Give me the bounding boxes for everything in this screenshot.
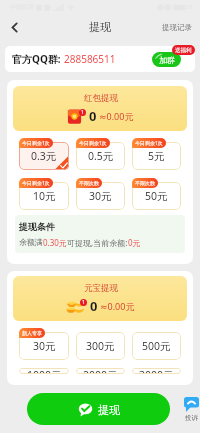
staticText: 提现 bbox=[89, 20, 111, 34]
button[interactable]: 1000元 bbox=[19, 368, 69, 374]
staticText: 今日剩余1次 bbox=[22, 180, 50, 187]
button[interactable]: 10元 bbox=[19, 182, 69, 210]
button[interactable]: 0.3元 bbox=[19, 142, 69, 170]
button[interactable]: 30元 bbox=[76, 182, 125, 210]
staticText: 0元 bbox=[128, 237, 141, 248]
staticText: 投诉 bbox=[185, 414, 198, 422]
staticText: 新人专享 bbox=[22, 330, 42, 336]
staticText: 2000元 bbox=[83, 368, 118, 374]
staticText: 1 bbox=[82, 299, 85, 306]
staticText: 今日剩余1次 bbox=[135, 140, 163, 147]
staticText: 0.3元 bbox=[31, 149, 57, 163]
staticText: 0.30元 bbox=[43, 237, 67, 248]
staticText: 0 bbox=[89, 107, 97, 125]
staticText: 加群 bbox=[159, 55, 175, 65]
staticText: 300元 bbox=[86, 339, 115, 353]
staticText: 30元 bbox=[33, 339, 56, 353]
staticText: 50元 bbox=[145, 189, 168, 203]
staticText: 官方QQ群: bbox=[12, 52, 64, 66]
staticText: 今日剩余1次 bbox=[22, 140, 50, 147]
button[interactable]: 500元 bbox=[132, 332, 181, 360]
button[interactable]: 50元 bbox=[132, 182, 181, 210]
staticText: 今日剩余1次 bbox=[79, 140, 107, 147]
staticText: 1000元 bbox=[27, 368, 62, 374]
button[interactable]: 加群 bbox=[152, 52, 181, 67]
staticText: 提现记录 bbox=[162, 23, 192, 32]
staticText: 不限次数 bbox=[135, 180, 155, 186]
staticText: 0.5元 bbox=[88, 149, 114, 163]
button[interactable]: 投诉 bbox=[183, 397, 199, 422]
button[interactable]: 2000元 bbox=[76, 368, 125, 374]
staticText: 送福利 bbox=[175, 47, 192, 54]
button[interactable]: 3000元 bbox=[132, 368, 181, 374]
staticText: 余额满 bbox=[19, 237, 43, 247]
button[interactable]: 300元 bbox=[76, 332, 125, 360]
staticText: 提现条件 bbox=[19, 221, 55, 232]
button[interactable]: 提现记录 bbox=[154, 17, 200, 38]
staticText: 3000元 bbox=[139, 368, 174, 374]
staticText: 0 bbox=[90, 297, 98, 315]
staticText: 10元 bbox=[33, 189, 56, 203]
staticText: 不限次数 bbox=[79, 180, 99, 186]
staticText: 红包提现 bbox=[84, 93, 118, 104]
button[interactable]: 5元 bbox=[132, 142, 181, 170]
staticText: 1 bbox=[81, 109, 84, 116]
staticText: ≈0.00元 bbox=[99, 110, 134, 122]
button[interactable]: 30元 bbox=[19, 332, 69, 360]
staticText: ≈0.00元 bbox=[100, 300, 135, 312]
staticText: 可提现,当前余额: bbox=[67, 237, 128, 248]
button[interactable]: 0.5元 bbox=[76, 142, 125, 170]
button[interactable]: Back bbox=[0, 13, 28, 41]
staticText: 5元 bbox=[148, 149, 165, 163]
staticText: 288586511 bbox=[64, 52, 116, 66]
staticText: 30元 bbox=[89, 189, 112, 203]
button[interactable]: 提现 bbox=[27, 393, 170, 425]
staticText: 500元 bbox=[142, 339, 171, 353]
staticText: 元宝提现 bbox=[84, 283, 118, 294]
staticText: 提现 bbox=[98, 403, 120, 417]
